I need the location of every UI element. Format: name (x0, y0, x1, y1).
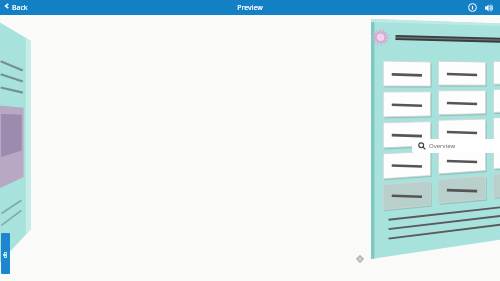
button[interactable]: Feedback (1, 233, 10, 274)
button[interactable]: Overview (412, 139, 500, 153)
staticText: Overview (429, 142, 456, 150)
button[interactable]: Information (465, 0, 480, 15)
button[interactable]: Back (0, 0, 34, 15)
staticText: Preview (237, 3, 263, 13)
staticText: Back (12, 3, 28, 13)
staticText: Feedback (1, 249, 10, 258)
button[interactable]: Sound (481, 0, 496, 15)
